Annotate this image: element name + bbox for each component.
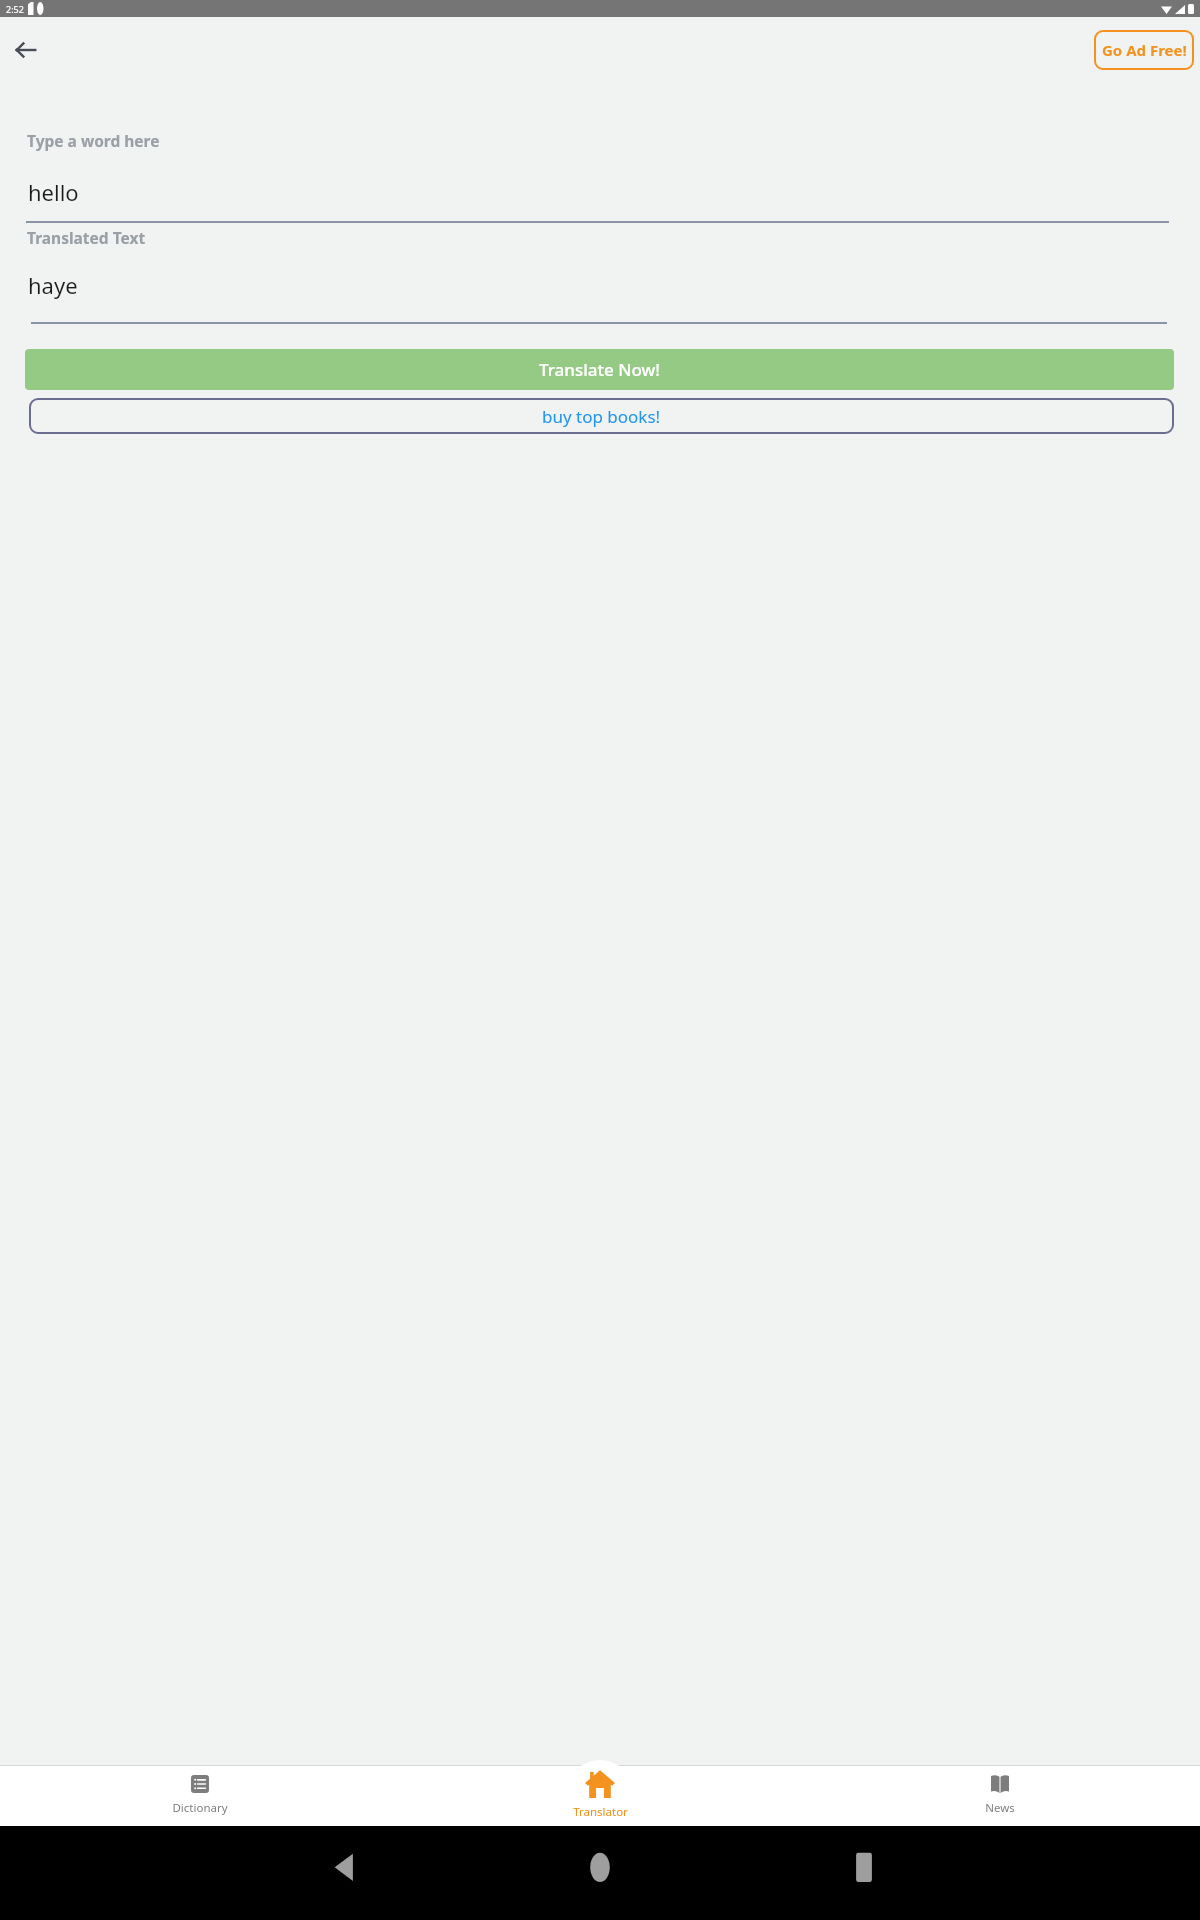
button[interactable]: Translator: [400, 1764, 800, 1826]
staticText: Translate Now!: [539, 358, 660, 381]
staticText: Translated Text: [27, 227, 146, 248]
staticText: Type a word here: [27, 130, 160, 151]
staticText: hello: [28, 177, 79, 207]
staticText: Dictionary: [172, 1800, 228, 1816]
staticText: 2:52: [6, 3, 24, 15]
staticText: buy top books!: [542, 405, 661, 428]
staticText: Translator: [573, 1804, 628, 1820]
button[interactable]: buy top books!: [29, 398, 1174, 434]
staticText: News: [985, 1800, 1015, 1816]
staticText: Go Ad Free!: [1102, 40, 1187, 60]
button[interactable]: Go Ad Free!: [1094, 30, 1194, 70]
button[interactable]: Translate Now!: [25, 349, 1174, 390]
button[interactable]: Dictionary: [0, 1764, 400, 1826]
staticText: haye: [28, 270, 78, 300]
button[interactable]: Back: [4, 28, 48, 72]
button[interactable]: News: [800, 1764, 1200, 1826]
